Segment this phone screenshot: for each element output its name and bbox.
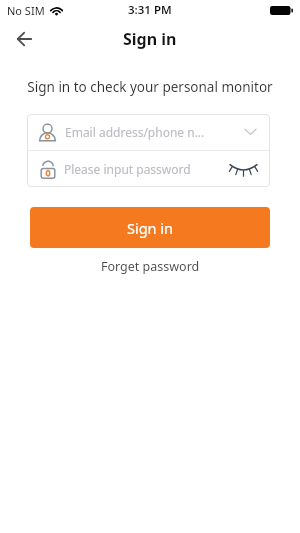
button[interactable]: Please input password <box>27 151 270 187</box>
staticText: Please input password <box>64 161 191 177</box>
staticText: Forget password <box>101 258 200 275</box>
staticText: Sign in <box>123 28 177 50</box>
staticText: Sign in to check your personal monitor <box>0 78 300 96</box>
staticText: No SIM <box>7 3 45 18</box>
button[interactable]: Email address/phone n... <box>27 114 270 150</box>
button[interactable]: Sign in <box>30 207 270 248</box>
staticText: 3:31 PM <box>128 2 172 18</box>
staticText: Sign in <box>127 218 174 238</box>
button[interactable] <box>8 23 40 55</box>
staticText: Email address/phone n... <box>65 124 205 140</box>
button[interactable]: Forget password <box>93 255 208 278</box>
